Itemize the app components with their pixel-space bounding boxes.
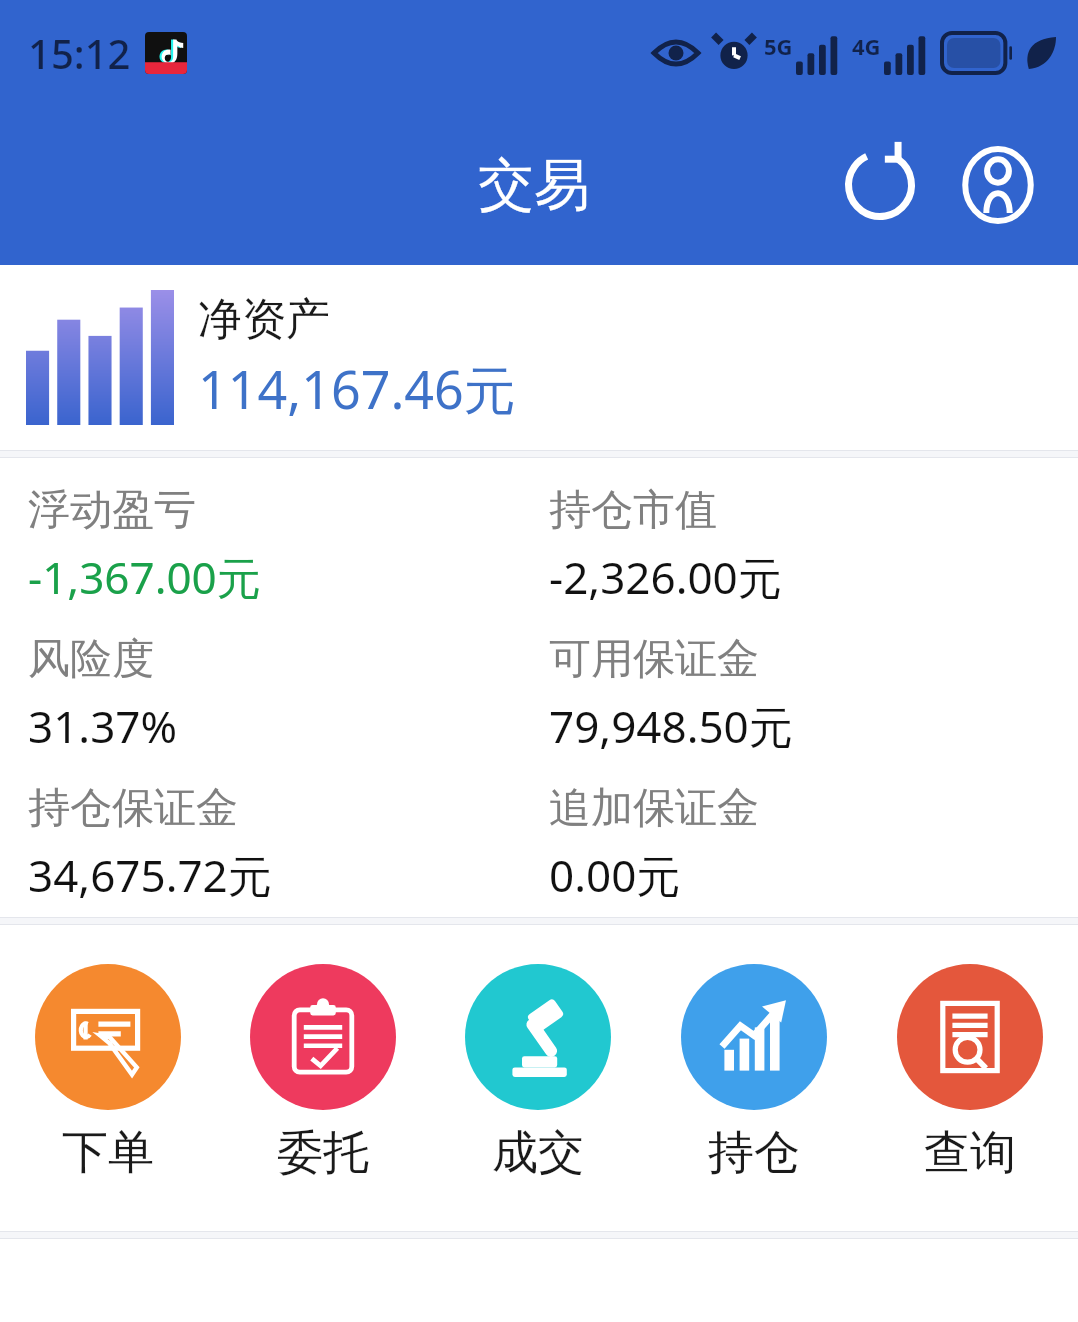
staticText: 成交 — [492, 1124, 584, 1182]
button[interactable]: 下单 — [0, 960, 215, 1186]
staticText: 查询 — [924, 1124, 1016, 1182]
staticText: -1,367.00元 — [28, 547, 261, 607]
button[interactable]: 委托 — [215, 960, 430, 1186]
staticText: 0.00元 — [549, 845, 681, 905]
staticText: 风险度 — [28, 633, 154, 686]
staticText: 34,675.72元 — [28, 845, 272, 905]
staticText: 4G — [852, 31, 881, 61]
staticText: 浮动盈亏 — [28, 484, 196, 537]
button[interactable]: Account — [950, 137, 1046, 233]
staticText: 追加保证金 — [549, 782, 759, 835]
staticText: -2,326.00元 — [549, 547, 782, 607]
staticText: 委托 — [277, 1124, 369, 1182]
staticText: 79,948.50元 — [549, 696, 793, 756]
button[interactable]: 成交 — [430, 960, 646, 1186]
staticText: 下单 — [62, 1124, 154, 1182]
staticText: 114,167.46元 — [198, 353, 516, 424]
button[interactable]: 查询 — [862, 960, 1078, 1186]
staticText: 交易 — [478, 150, 590, 221]
button[interactable]: Refresh — [832, 137, 928, 233]
staticText: 持仓市值 — [549, 484, 717, 537]
staticText: 15:12 — [28, 26, 131, 80]
button[interactable]: 持仓 — [646, 960, 862, 1186]
staticText: 可用保证金 — [549, 633, 759, 686]
staticText: 31.37% — [28, 696, 178, 756]
staticText: 持仓保证金 — [28, 782, 238, 835]
staticText: 净资产 — [198, 292, 330, 347]
staticText: 5G — [764, 31, 793, 61]
staticText: 持仓 — [708, 1124, 800, 1182]
